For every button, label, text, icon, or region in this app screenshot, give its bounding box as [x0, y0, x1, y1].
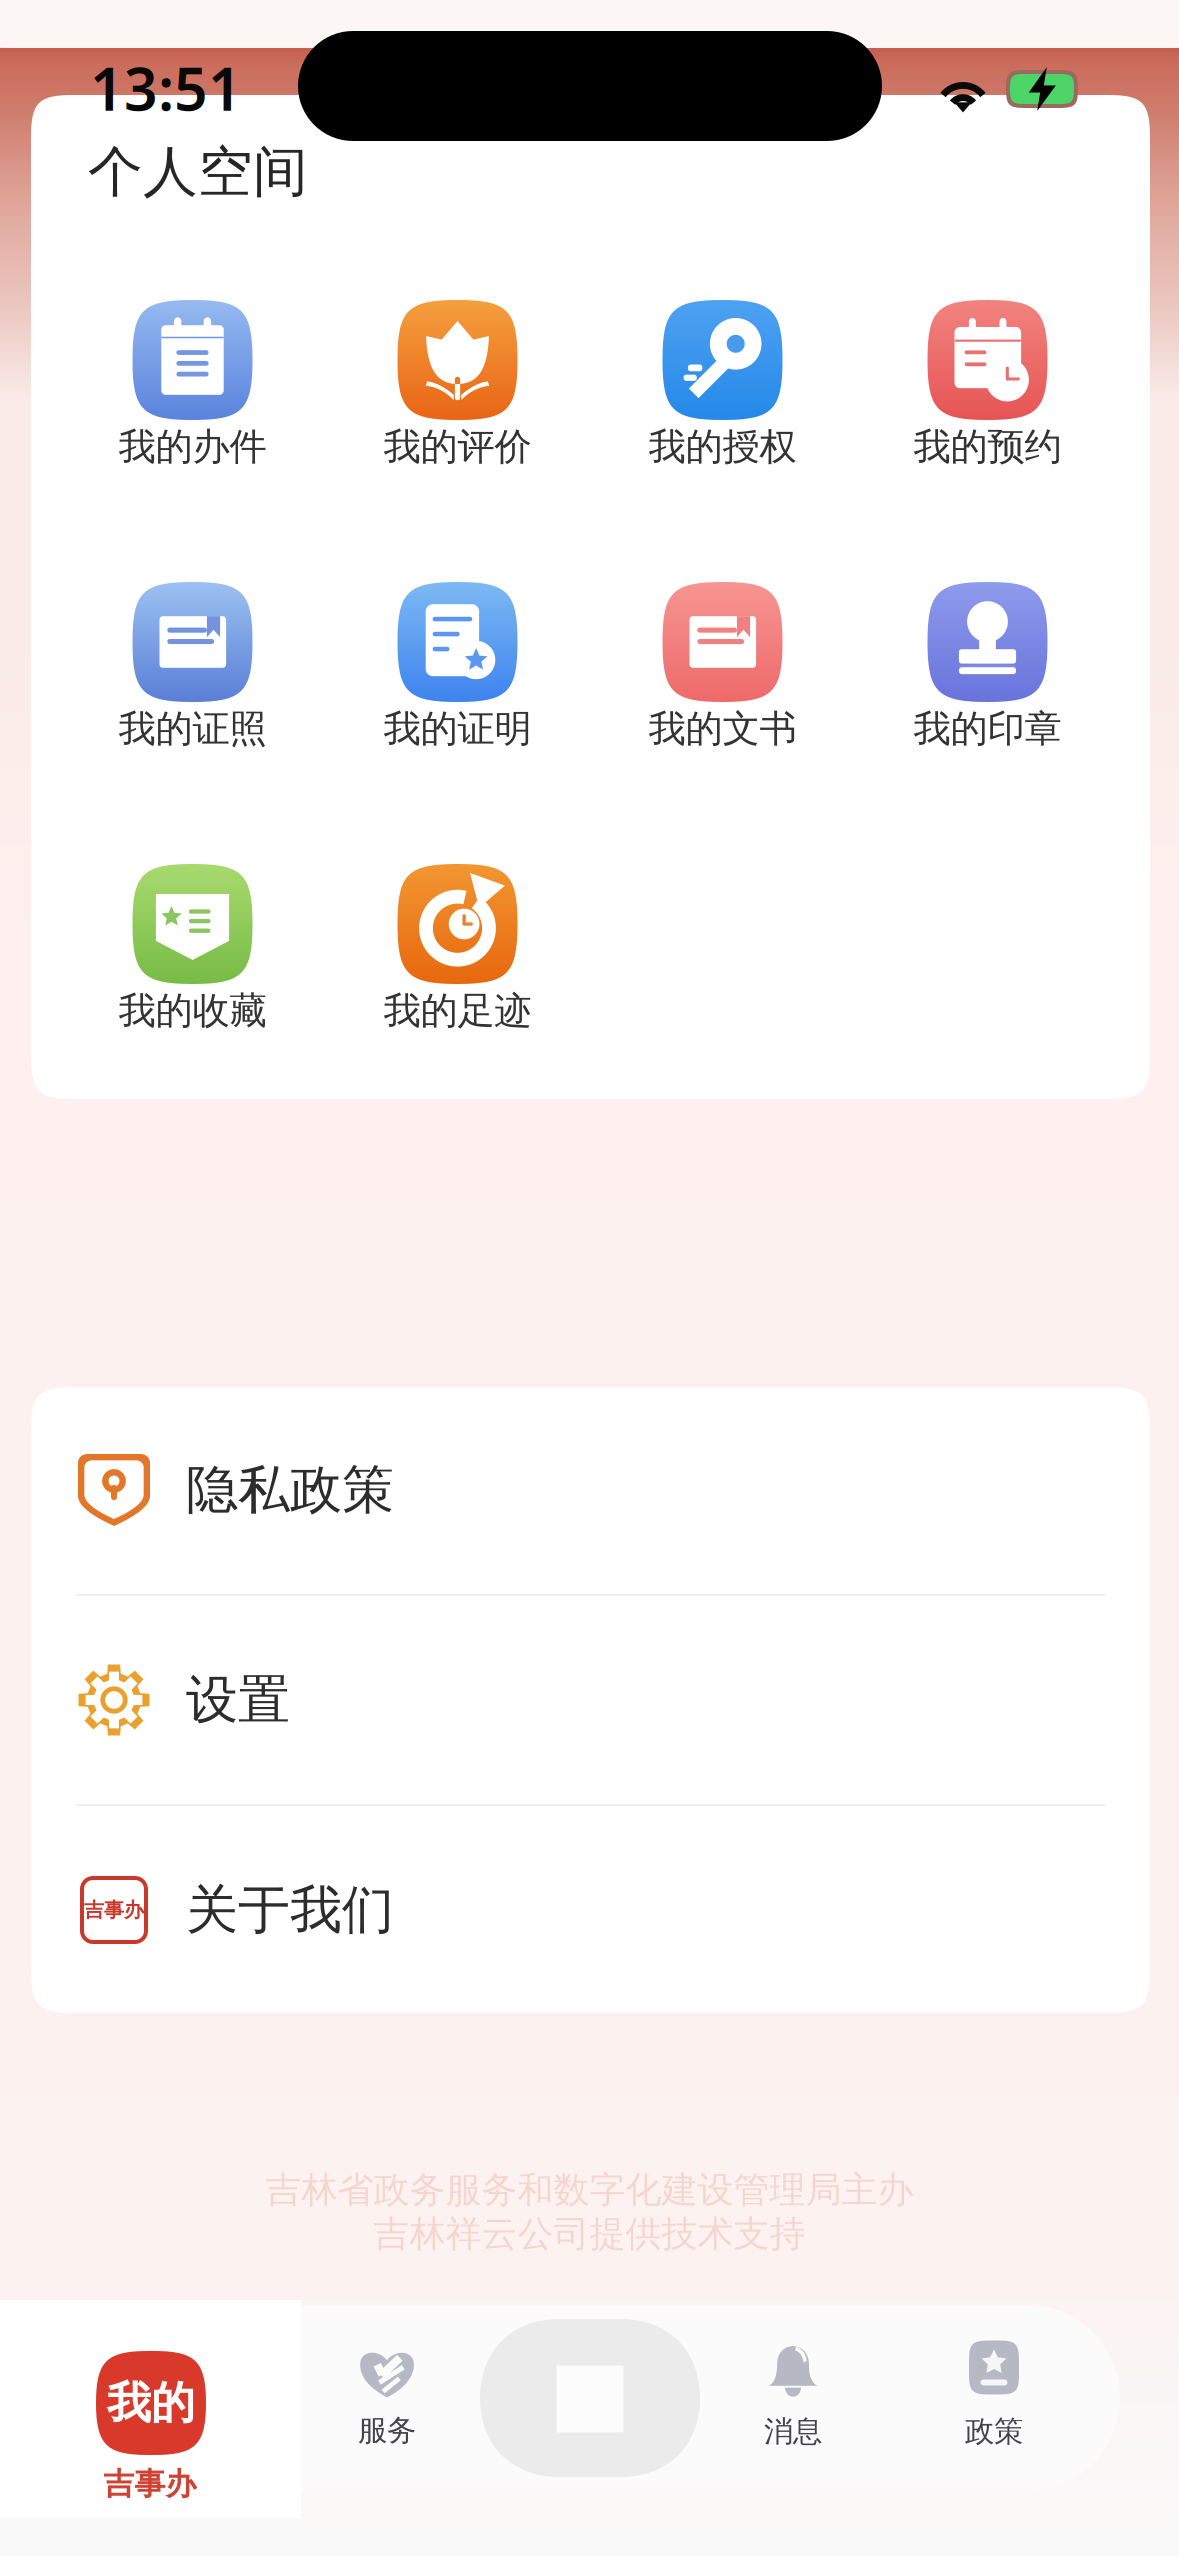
- staticText: 我的授权: [648, 424, 796, 470]
- button[interactable]: 消息: [708, 2333, 878, 2453]
- staticText: 13:51: [90, 49, 242, 127]
- button[interactable]: 设置: [31, 1596, 1150, 1804]
- button[interactable]: 服务: [302, 2338, 472, 2458]
- staticText: 我的评价: [383, 424, 531, 470]
- staticText: 设置: [186, 1668, 290, 1732]
- button[interactable]: 我的办件: [60, 300, 325, 582]
- button[interactable]: 政策: [909, 2333, 1079, 2453]
- button[interactable]: 我的收藏: [60, 864, 325, 1146]
- staticText: 服务: [358, 2412, 416, 2448]
- staticText: 个人空间: [88, 138, 308, 205]
- staticText: 我的证明: [383, 706, 531, 752]
- staticText: 我的: [107, 2376, 195, 2430]
- staticText: 吉事办: [103, 2465, 196, 2503]
- staticText: 我的办件: [118, 424, 266, 470]
- staticText: 我的证照: [118, 706, 266, 752]
- staticText: 隐私政策: [186, 1458, 394, 1522]
- staticText: 政策: [965, 2413, 1023, 2449]
- staticText: 消息: [764, 2413, 822, 2449]
- button[interactable]: 我的文书: [590, 582, 855, 864]
- staticText: 我的足迹: [383, 988, 531, 1034]
- button[interactable]: 吉事办: [31, 1806, 1150, 2014]
- staticText: 我的预约: [913, 424, 1061, 470]
- button[interactable]: 我的: [0, 2300, 301, 2518]
- button[interactable]: 隐私政策: [31, 1386, 1150, 1594]
- staticText: 吉林省政务服务和数字化建设管理局主办: [265, 2168, 913, 2212]
- button[interactable]: 我的授权: [590, 300, 855, 582]
- staticText: 我的印章: [913, 706, 1061, 752]
- button[interactable]: 我的证明: [325, 582, 590, 864]
- staticText: 吉事办: [84, 1898, 144, 1922]
- staticText: 我的文书: [648, 706, 796, 752]
- staticText: 吉林祥云公司提供技术支持: [373, 2212, 805, 2256]
- button[interactable]: 我的预约: [855, 300, 1120, 582]
- button[interactable]: 我的印章: [855, 582, 1120, 864]
- button[interactable]: 我的足迹: [325, 864, 590, 1146]
- staticText: 我的收藏: [118, 988, 266, 1034]
- button[interactable]: 我的证照: [60, 582, 325, 864]
- button[interactable]: 我的评价: [325, 300, 590, 582]
- staticText: 关于我们: [186, 1878, 394, 1942]
